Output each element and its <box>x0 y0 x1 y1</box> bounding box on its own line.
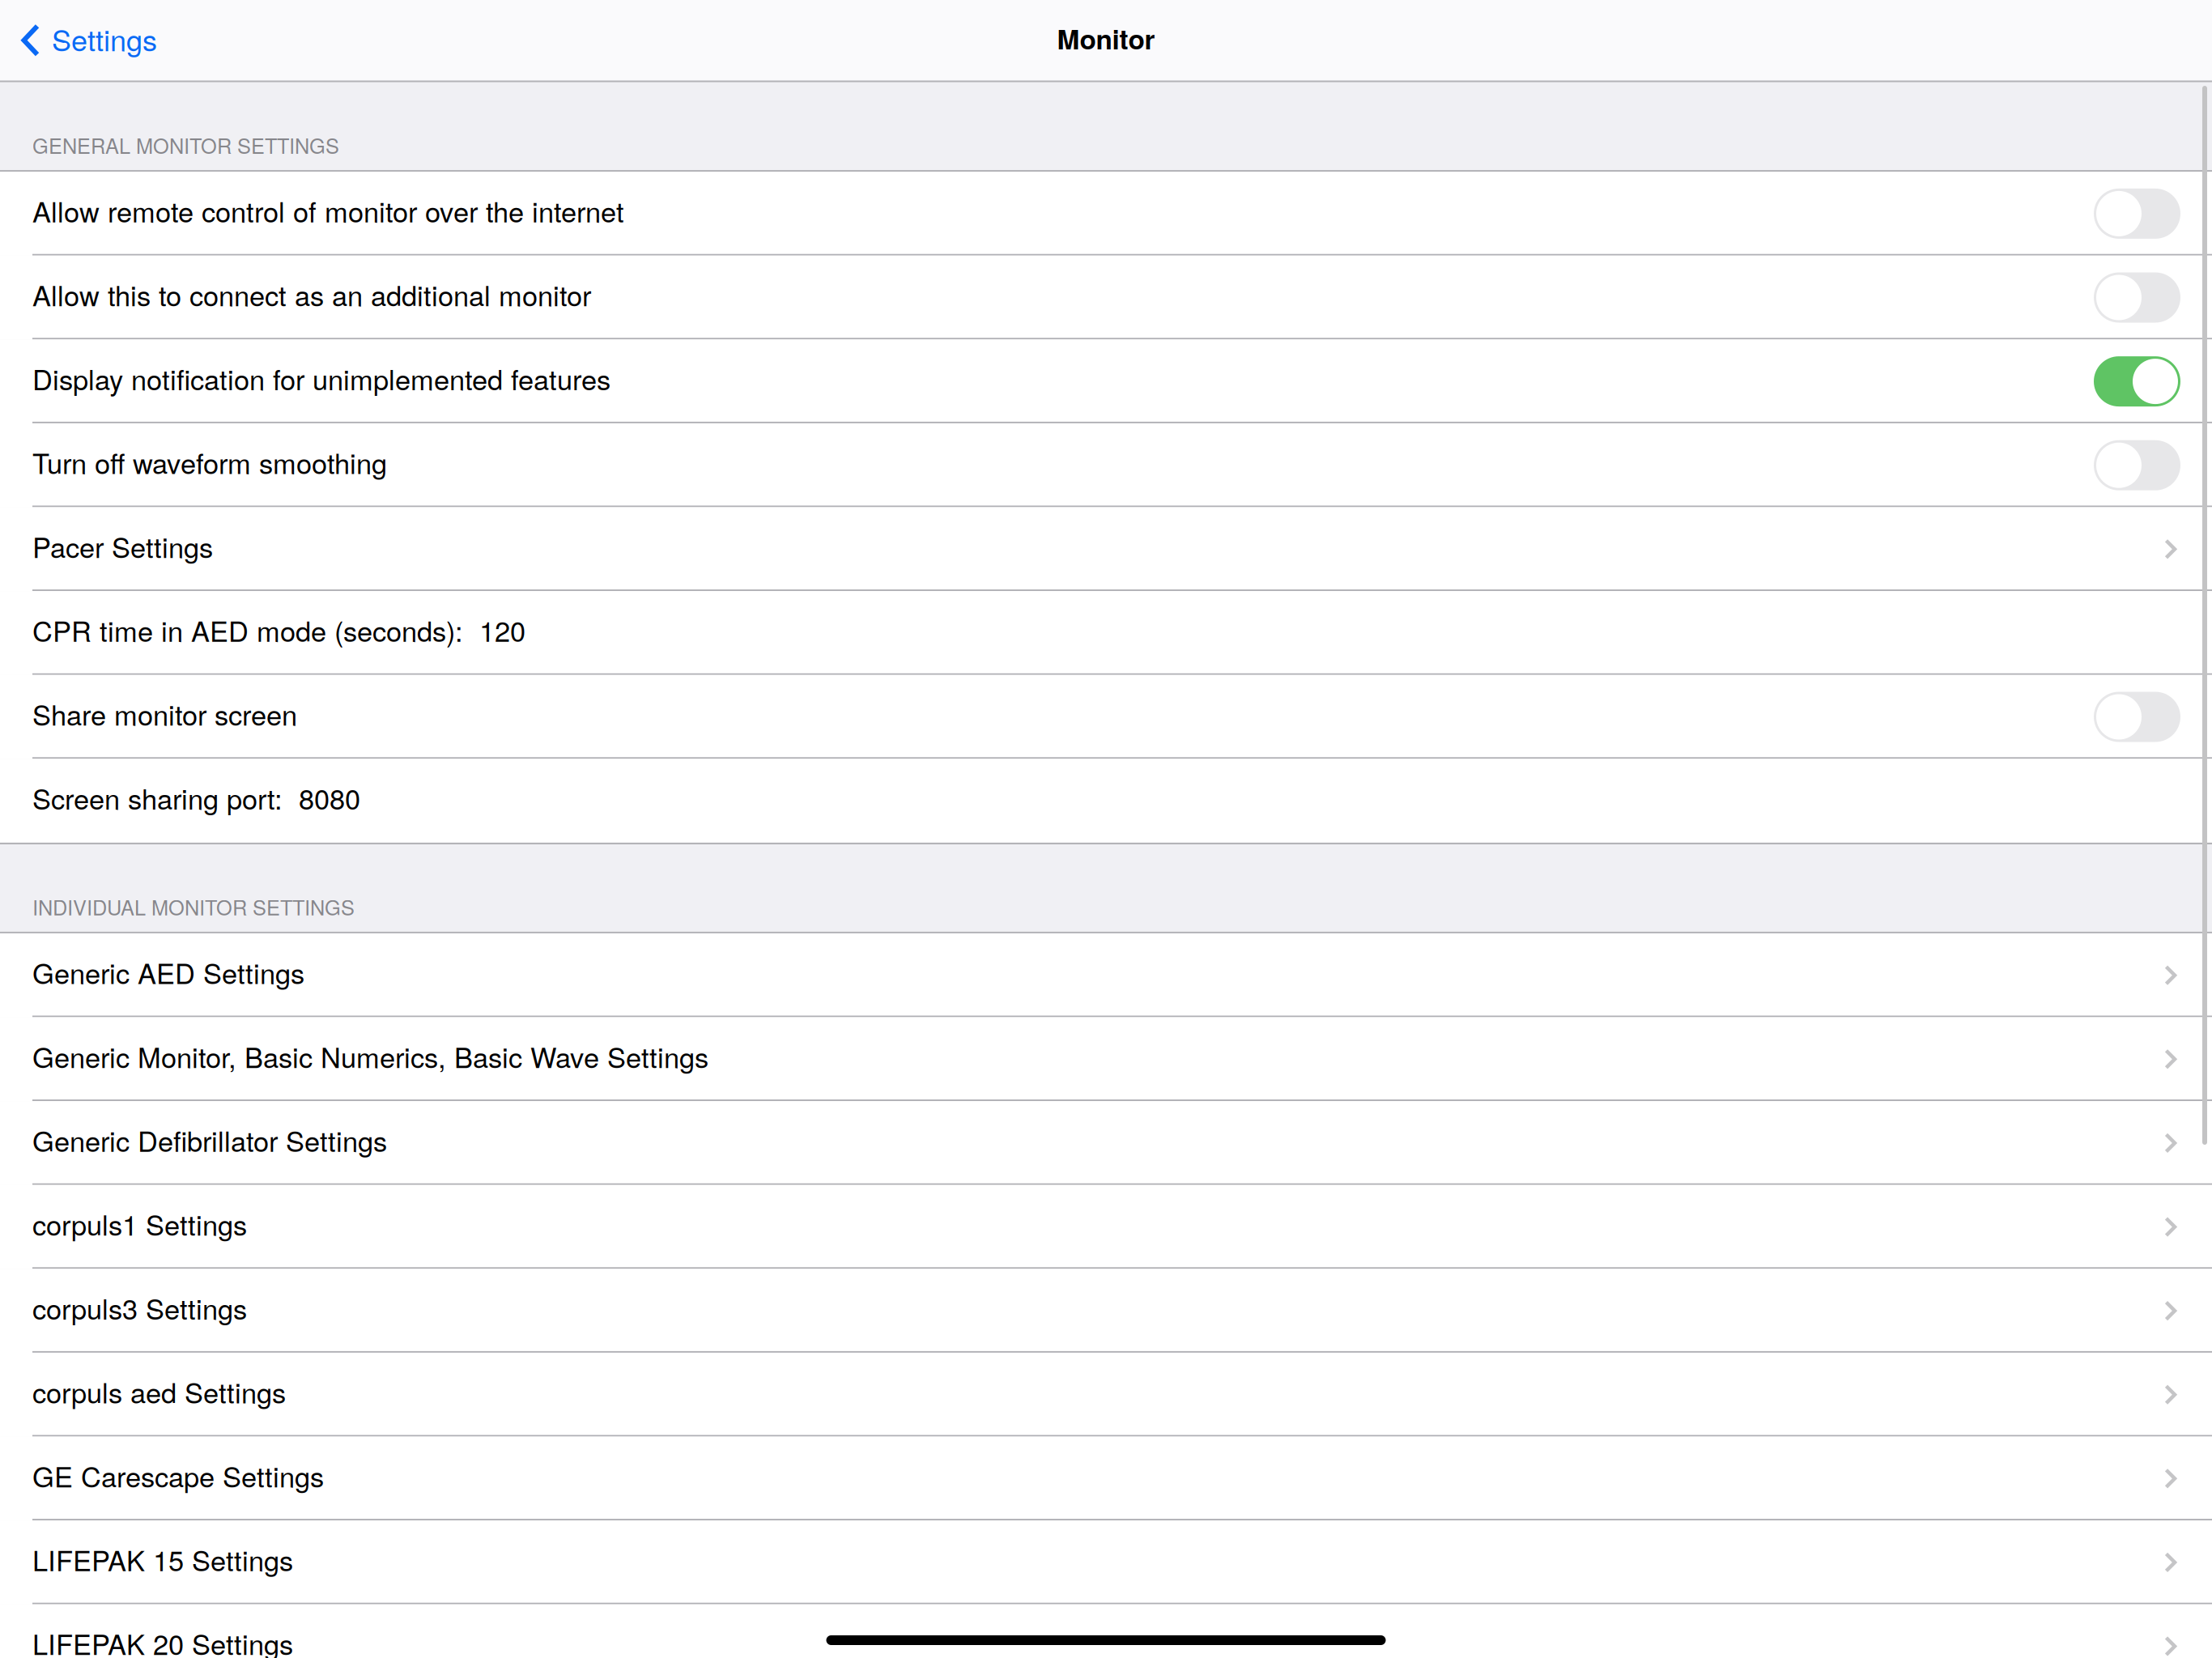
staticText: Generic AED Settings <box>32 952 304 992</box>
staticText: corpuls aed Settings <box>32 1371 286 1411</box>
staticText: Screen sharing port: 8080 <box>32 778 360 818</box>
staticText: Allow remote control of monitor over the… <box>32 190 624 230</box>
button[interactable]: GE Carescape Settings <box>0 1437 2212 1520</box>
button[interactable]: Generic Monitor, Basic Numerics, Basic W… <box>0 1017 2212 1101</box>
button[interactable]: corpuls3 Settings <box>0 1269 2212 1353</box>
staticText: LIFEPAK 20 Settings <box>32 1623 293 1658</box>
staticText: Generic Monitor, Basic Numerics, Basic W… <box>32 1036 708 1076</box>
staticText: Generic Defibrillator Settings <box>32 1120 387 1160</box>
staticText: corpuls3 Settings <box>32 1288 247 1328</box>
button[interactable]: Pacer Settings <box>0 507 2212 591</box>
button[interactable]: LIFEPAK 20 Settings <box>0 1604 2212 1658</box>
button[interactable]: Generic AED Settings <box>0 933 2212 1017</box>
button[interactable]: Share monitor screen <box>0 675 2212 759</box>
button[interactable]: Settings <box>0 0 157 81</box>
staticText: Pacer Settings <box>32 526 213 566</box>
staticText: GENERAL MONITOR SETTINGS <box>32 130 339 160</box>
staticText: INDIVIDUAL MONITOR SETTINGS <box>32 892 355 921</box>
button[interactable]: LIFEPAK 15 Settings <box>0 1520 2212 1604</box>
button[interactable]: Turn off waveform smoothing <box>0 423 2212 507</box>
staticText: Display notification for unimplemented f… <box>32 358 610 398</box>
staticText: corpuls1 Settings <box>32 1204 247 1244</box>
staticText: GE Carescape Settings <box>32 1455 324 1495</box>
button[interactable]: Display notification for unimplemented f… <box>0 339 2212 423</box>
staticText: CPR time in AED mode (seconds): 120 <box>32 610 525 650</box>
staticText: Turn off waveform smoothing <box>32 442 387 482</box>
staticText: Allow this to connect as an additional m… <box>32 274 591 314</box>
staticText: Share monitor screen <box>32 694 297 734</box>
staticText: Monitor <box>1057 19 1155 58</box>
button[interactable]: corpuls1 Settings <box>0 1185 2212 1269</box>
button[interactable]: Allow this to connect as an additional m… <box>0 256 2212 339</box>
staticText: Settings <box>52 18 157 60</box>
button[interactable]: Generic Defibrillator Settings <box>0 1101 2212 1185</box>
button[interactable]: corpuls aed Settings <box>0 1353 2212 1437</box>
staticText: LIFEPAK 15 Settings <box>32 1539 293 1579</box>
button[interactable]: Allow remote control of monitor over the… <box>0 172 2212 256</box>
